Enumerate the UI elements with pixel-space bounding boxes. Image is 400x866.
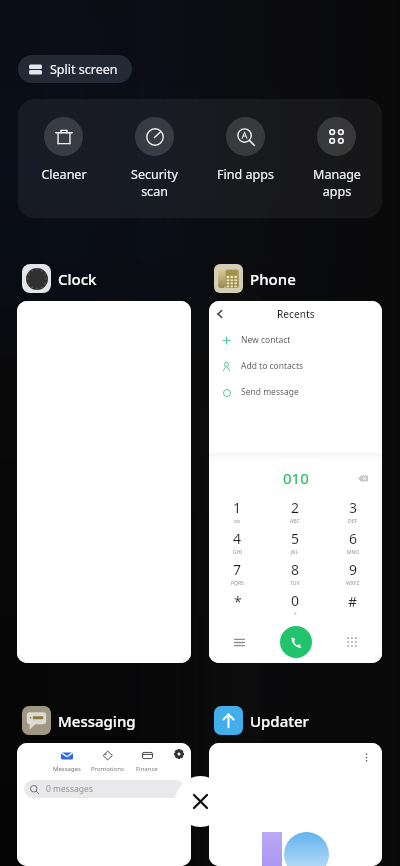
button[interactable]: 1 [209,496,266,527]
button[interactable]: 6 [324,527,382,558]
button[interactable]: 2 [266,496,324,527]
staticText: GHI [233,549,243,556]
button[interactable]: # [324,589,382,620]
staticText: Finance [136,765,158,773]
staticText: 4 [233,529,242,548]
button[interactable]: Updater [209,706,382,866]
button[interactable]: Settings [167,749,191,775]
staticText: Split screen [50,61,118,78]
staticText: Find apps [217,166,274,183]
button[interactable]: 3 [324,496,382,527]
staticText: 2 [291,498,300,517]
button[interactable]: Cleaner [18,99,109,218]
staticText: PQRS [231,580,244,587]
staticText: 1 [233,498,242,517]
staticText: + [294,611,297,618]
staticText: 8 [291,560,300,579]
button[interactable]: Clock [17,264,191,663]
button[interactable]: Keypad [342,632,362,652]
button[interactable]: Security scan [109,99,200,218]
staticText: 7 [233,560,242,579]
staticText: Recents [277,307,315,321]
staticText: MNO [347,549,360,556]
button[interactable]: New contact [209,327,382,353]
button[interactable]: Split screen [18,55,132,83]
staticText: JKL [291,549,299,556]
staticText: 3 [349,498,358,517]
button[interactable]: 8 [266,558,324,589]
staticText: Send message [241,386,299,398]
staticText: Updater [250,711,309,731]
staticText: New contact [241,334,291,346]
button[interactable]: * [209,589,266,620]
staticText: WXYZ [346,580,360,587]
staticText: * [234,592,242,611]
staticText: 9 [349,560,358,579]
button[interactable]: 0 [266,589,324,620]
button[interactable]: Manage apps [291,99,382,218]
staticText: Add to contacts [241,360,304,372]
button[interactable]: Promotions [87,749,127,773]
button[interactable]: Close all [175,776,226,827]
button[interactable]: Send message [209,379,382,405]
staticText: Promotions [91,765,124,773]
button[interactable]: Call [280,626,312,658]
button[interactable]: Add to contacts [209,353,382,379]
staticText: Phone [250,269,296,289]
staticText: 0 messages [46,783,93,795]
staticText: 010 [283,468,309,488]
staticText: 0 [291,591,300,610]
staticText: Messages [53,765,81,773]
staticText: 5 [291,529,300,548]
staticText: DEF [348,518,358,525]
button[interactable]: 4 [209,527,266,558]
button[interactable]: Backspace [356,471,370,485]
staticText: oo [234,518,241,525]
button[interactable]: 7 [209,558,266,589]
button[interactable]: 5 [266,527,324,558]
button[interactable]: Find apps [200,99,291,218]
button[interactable]: Messages [46,749,87,773]
staticText: Manage apps [313,166,361,199]
button[interactable]: Phone [209,264,382,663]
button[interactable]: Messaging [17,706,191,866]
staticText: Security scan [131,166,178,199]
staticText: ABC [290,518,300,525]
button[interactable]: Finance [127,749,167,773]
button[interactable]: More options [358,749,374,765]
staticText: Cleaner [41,166,87,183]
staticText: Messaging [58,711,136,731]
button[interactable]: Call log [229,632,249,652]
button[interactable]: Back [212,306,228,322]
button[interactable]: 0 messages [24,780,185,798]
staticText: Clock [58,269,97,289]
staticText: TUV [290,580,300,587]
staticText: # [348,592,358,611]
button[interactable]: 9 [324,558,382,589]
staticText: 6 [349,529,358,548]
